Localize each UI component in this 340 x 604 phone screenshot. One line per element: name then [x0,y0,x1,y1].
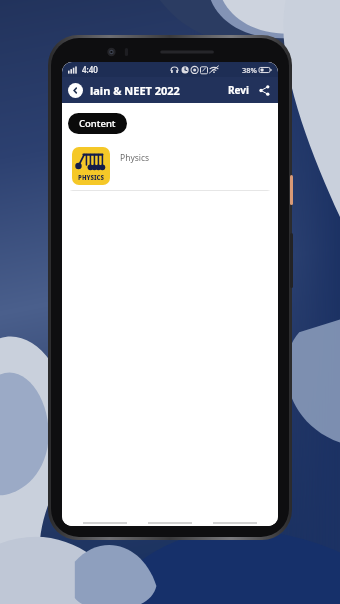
button[interactable]: Revi [228,83,250,97]
button[interactable]: PHYSICS [67,142,273,191]
staticText: PHYSICS [78,174,104,182]
staticText: lain & NEET 2022 [90,83,180,98]
staticText: Physics [120,152,150,164]
button[interactable]: Back [68,83,83,98]
staticText: 38% [242,65,257,75]
staticText: Revi [228,83,250,97]
button[interactable]: Share [256,82,272,98]
staticText: Content [79,117,116,130]
button[interactable]: Content [68,113,127,134]
staticText: 4:40 [82,64,98,75]
